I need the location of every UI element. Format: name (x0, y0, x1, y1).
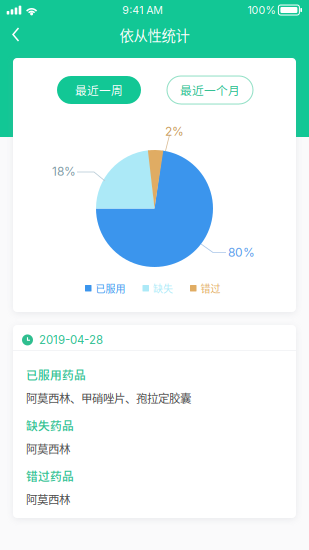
button[interactable]: 返回 (0, 20, 33, 50)
staticText: 18% (52, 164, 76, 178)
staticText: 最近一周 (75, 81, 123, 98)
staticText: 80% (228, 245, 255, 259)
staticText: 依从性统计 (119, 25, 189, 45)
staticText: 2% (165, 124, 184, 138)
staticText: 已服用 (95, 281, 125, 295)
staticText: 阿莫西林、甲硝唑片、孢拉定胶囊 (26, 389, 191, 406)
staticText: 缺失药品 (26, 417, 74, 434)
staticText: 阿莫西林 (26, 440, 70, 457)
staticText: 错过 (200, 281, 220, 295)
staticText: 100% (247, 3, 275, 16)
staticText: 已服用药品 (26, 366, 86, 383)
staticText: 9:41 AM (122, 3, 163, 16)
staticText: 阿莫西林 (26, 491, 70, 507)
button[interactable]: 最近一个月 (167, 76, 253, 104)
staticText: 错过药品 (26, 467, 74, 484)
staticText: 缺失 (153, 281, 173, 295)
staticText: 2019-04-28 (39, 333, 103, 347)
staticText: 最近一个月 (180, 81, 240, 98)
button[interactable]: 最近一周 (57, 76, 141, 104)
